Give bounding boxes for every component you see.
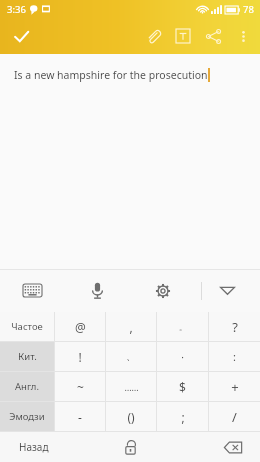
button[interactable]: () xyxy=(106,402,156,431)
button[interactable]: Switch keyboard xyxy=(0,269,65,312)
button[interactable]: 、 xyxy=(106,342,156,371)
staticText: Англ. xyxy=(15,380,39,393)
staticText: , xyxy=(129,319,133,335)
staticText: ; xyxy=(181,409,185,425)
staticText: Назад xyxy=(19,440,49,454)
staticText: Кит. xyxy=(18,350,37,363)
staticText: - xyxy=(78,409,82,425)
staticText: 。 xyxy=(179,322,187,332)
button[interactable]: Hide keyboard xyxy=(195,269,260,312)
button[interactable]: Keyboard settings xyxy=(130,269,195,312)
button[interactable]: Эмодзи xyxy=(0,402,54,431)
button[interactable]: Done xyxy=(4,19,38,53)
staticText: : xyxy=(233,349,236,364)
button[interactable]: Назад xyxy=(0,432,68,462)
staticText: 3:36 xyxy=(7,3,26,16)
staticText: + xyxy=(231,378,239,396)
staticText: 78 xyxy=(243,3,254,16)
button[interactable]: ; xyxy=(157,402,208,431)
staticText: …… xyxy=(124,381,139,393)
staticText: / xyxy=(232,408,237,426)
button[interactable]: - xyxy=(55,402,105,431)
button[interactable]: Share xyxy=(198,21,228,51)
staticText: ? xyxy=(232,318,238,336)
button[interactable]: ~ xyxy=(55,372,105,401)
staticText: () xyxy=(127,409,135,425)
button[interactable]: Text formatting xyxy=(168,21,198,51)
staticText: · xyxy=(181,350,184,364)
button[interactable]: ? xyxy=(209,312,260,341)
button[interactable]: ! xyxy=(55,342,105,371)
button[interactable]: Backspace xyxy=(216,432,250,462)
staticText: ! xyxy=(78,349,82,365)
button[interactable]: …… xyxy=(106,372,156,401)
staticText: @ xyxy=(75,319,86,335)
button[interactable]: + xyxy=(209,372,260,401)
button[interactable]: Voice input xyxy=(65,269,130,312)
button[interactable]: Lock xyxy=(108,432,152,462)
staticText: Is a new hampshire for the prosecution xyxy=(14,68,208,82)
button[interactable]: / xyxy=(209,402,260,431)
button[interactable]: , xyxy=(106,312,156,341)
button[interactable]: $ xyxy=(157,372,208,401)
staticText: 、 xyxy=(126,350,136,363)
button[interactable]: Частое xyxy=(0,312,54,341)
button[interactable]: Кит. xyxy=(0,342,54,371)
button[interactable]: : xyxy=(209,342,260,371)
staticText: ~ xyxy=(77,379,84,395)
staticText: Эмодзи xyxy=(9,410,45,423)
button[interactable]: Англ. xyxy=(0,372,54,401)
button[interactable]: · xyxy=(157,342,208,371)
button[interactable]: Attach xyxy=(138,21,168,51)
staticText: $ xyxy=(179,379,186,395)
button[interactable]: @ xyxy=(55,312,105,341)
staticText: Частое xyxy=(11,320,43,333)
button[interactable]: More options xyxy=(228,21,258,51)
